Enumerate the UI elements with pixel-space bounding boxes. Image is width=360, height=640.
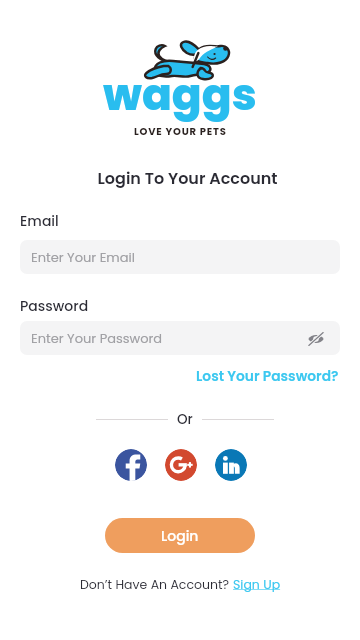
staticText: Login bbox=[161, 526, 199, 546]
button[interactable]: Show password bbox=[300, 323, 331, 354]
button[interactable]: Sign in with Facebook bbox=[115, 449, 147, 481]
staticText: waggs bbox=[103, 64, 257, 126]
button[interactable]: Sign in with LinkedIn bbox=[215, 449, 247, 481]
staticText: LOVE YOUR PETS bbox=[134, 124, 227, 138]
button[interactable]: Enter Your Email bbox=[20, 240, 340, 274]
staticText: Enter Your Email bbox=[31, 248, 135, 266]
staticText: Login To Your Account bbox=[97, 167, 278, 189]
staticText: Password bbox=[20, 296, 89, 316]
button[interactable]: Lost Your Password? bbox=[196, 367, 339, 386]
button[interactable]: Login bbox=[105, 518, 255, 553]
button[interactable]: Sign in with Google Plus bbox=[165, 449, 197, 481]
staticText: Email bbox=[20, 211, 59, 231]
button[interactable]: Enter Your Password bbox=[20, 321, 340, 355]
staticText: Sign Up bbox=[233, 576, 281, 593]
staticText: Or bbox=[177, 410, 193, 429]
staticText: Enter Your Password bbox=[31, 329, 163, 347]
staticText: Don’t Have An Account? bbox=[80, 576, 233, 593]
button[interactable]: Sign Up bbox=[233, 576, 281, 593]
staticText: Lost Your Password? bbox=[196, 367, 339, 386]
